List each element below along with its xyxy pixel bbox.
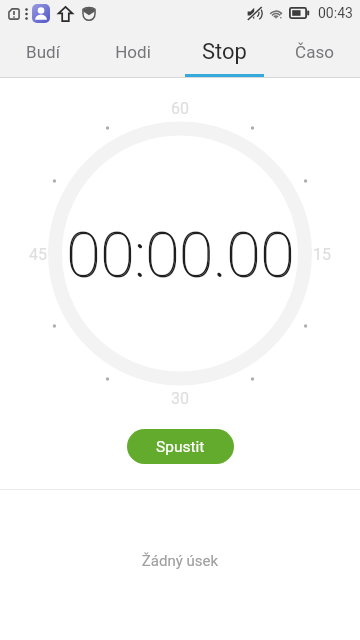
button[interactable]: Budí bbox=[0, 26, 88, 77]
button[interactable]: Spustit bbox=[127, 429, 234, 464]
staticText: 15 bbox=[313, 245, 331, 264]
staticText: Hodi bbox=[115, 42, 151, 62]
staticText: 00:00.00 bbox=[1, 219, 360, 292]
button[interactable]: Stop bbox=[179, 26, 269, 77]
staticText: Stop bbox=[202, 39, 247, 65]
staticText: 00:43 bbox=[318, 5, 353, 21]
button[interactable]: Hodi bbox=[88, 26, 178, 77]
staticText: Budí bbox=[26, 42, 60, 62]
staticText: 30 bbox=[171, 389, 189, 408]
staticText: 00:00.00 bbox=[0, 218, 360, 291]
button[interactable]: Časo bbox=[269, 26, 359, 77]
staticText: 45 bbox=[29, 245, 47, 264]
staticText: Žádný úsek bbox=[0, 552, 360, 570]
staticText: Časo bbox=[295, 42, 334, 62]
staticText: Spustit bbox=[156, 438, 205, 456]
staticText: 60 bbox=[171, 99, 189, 118]
